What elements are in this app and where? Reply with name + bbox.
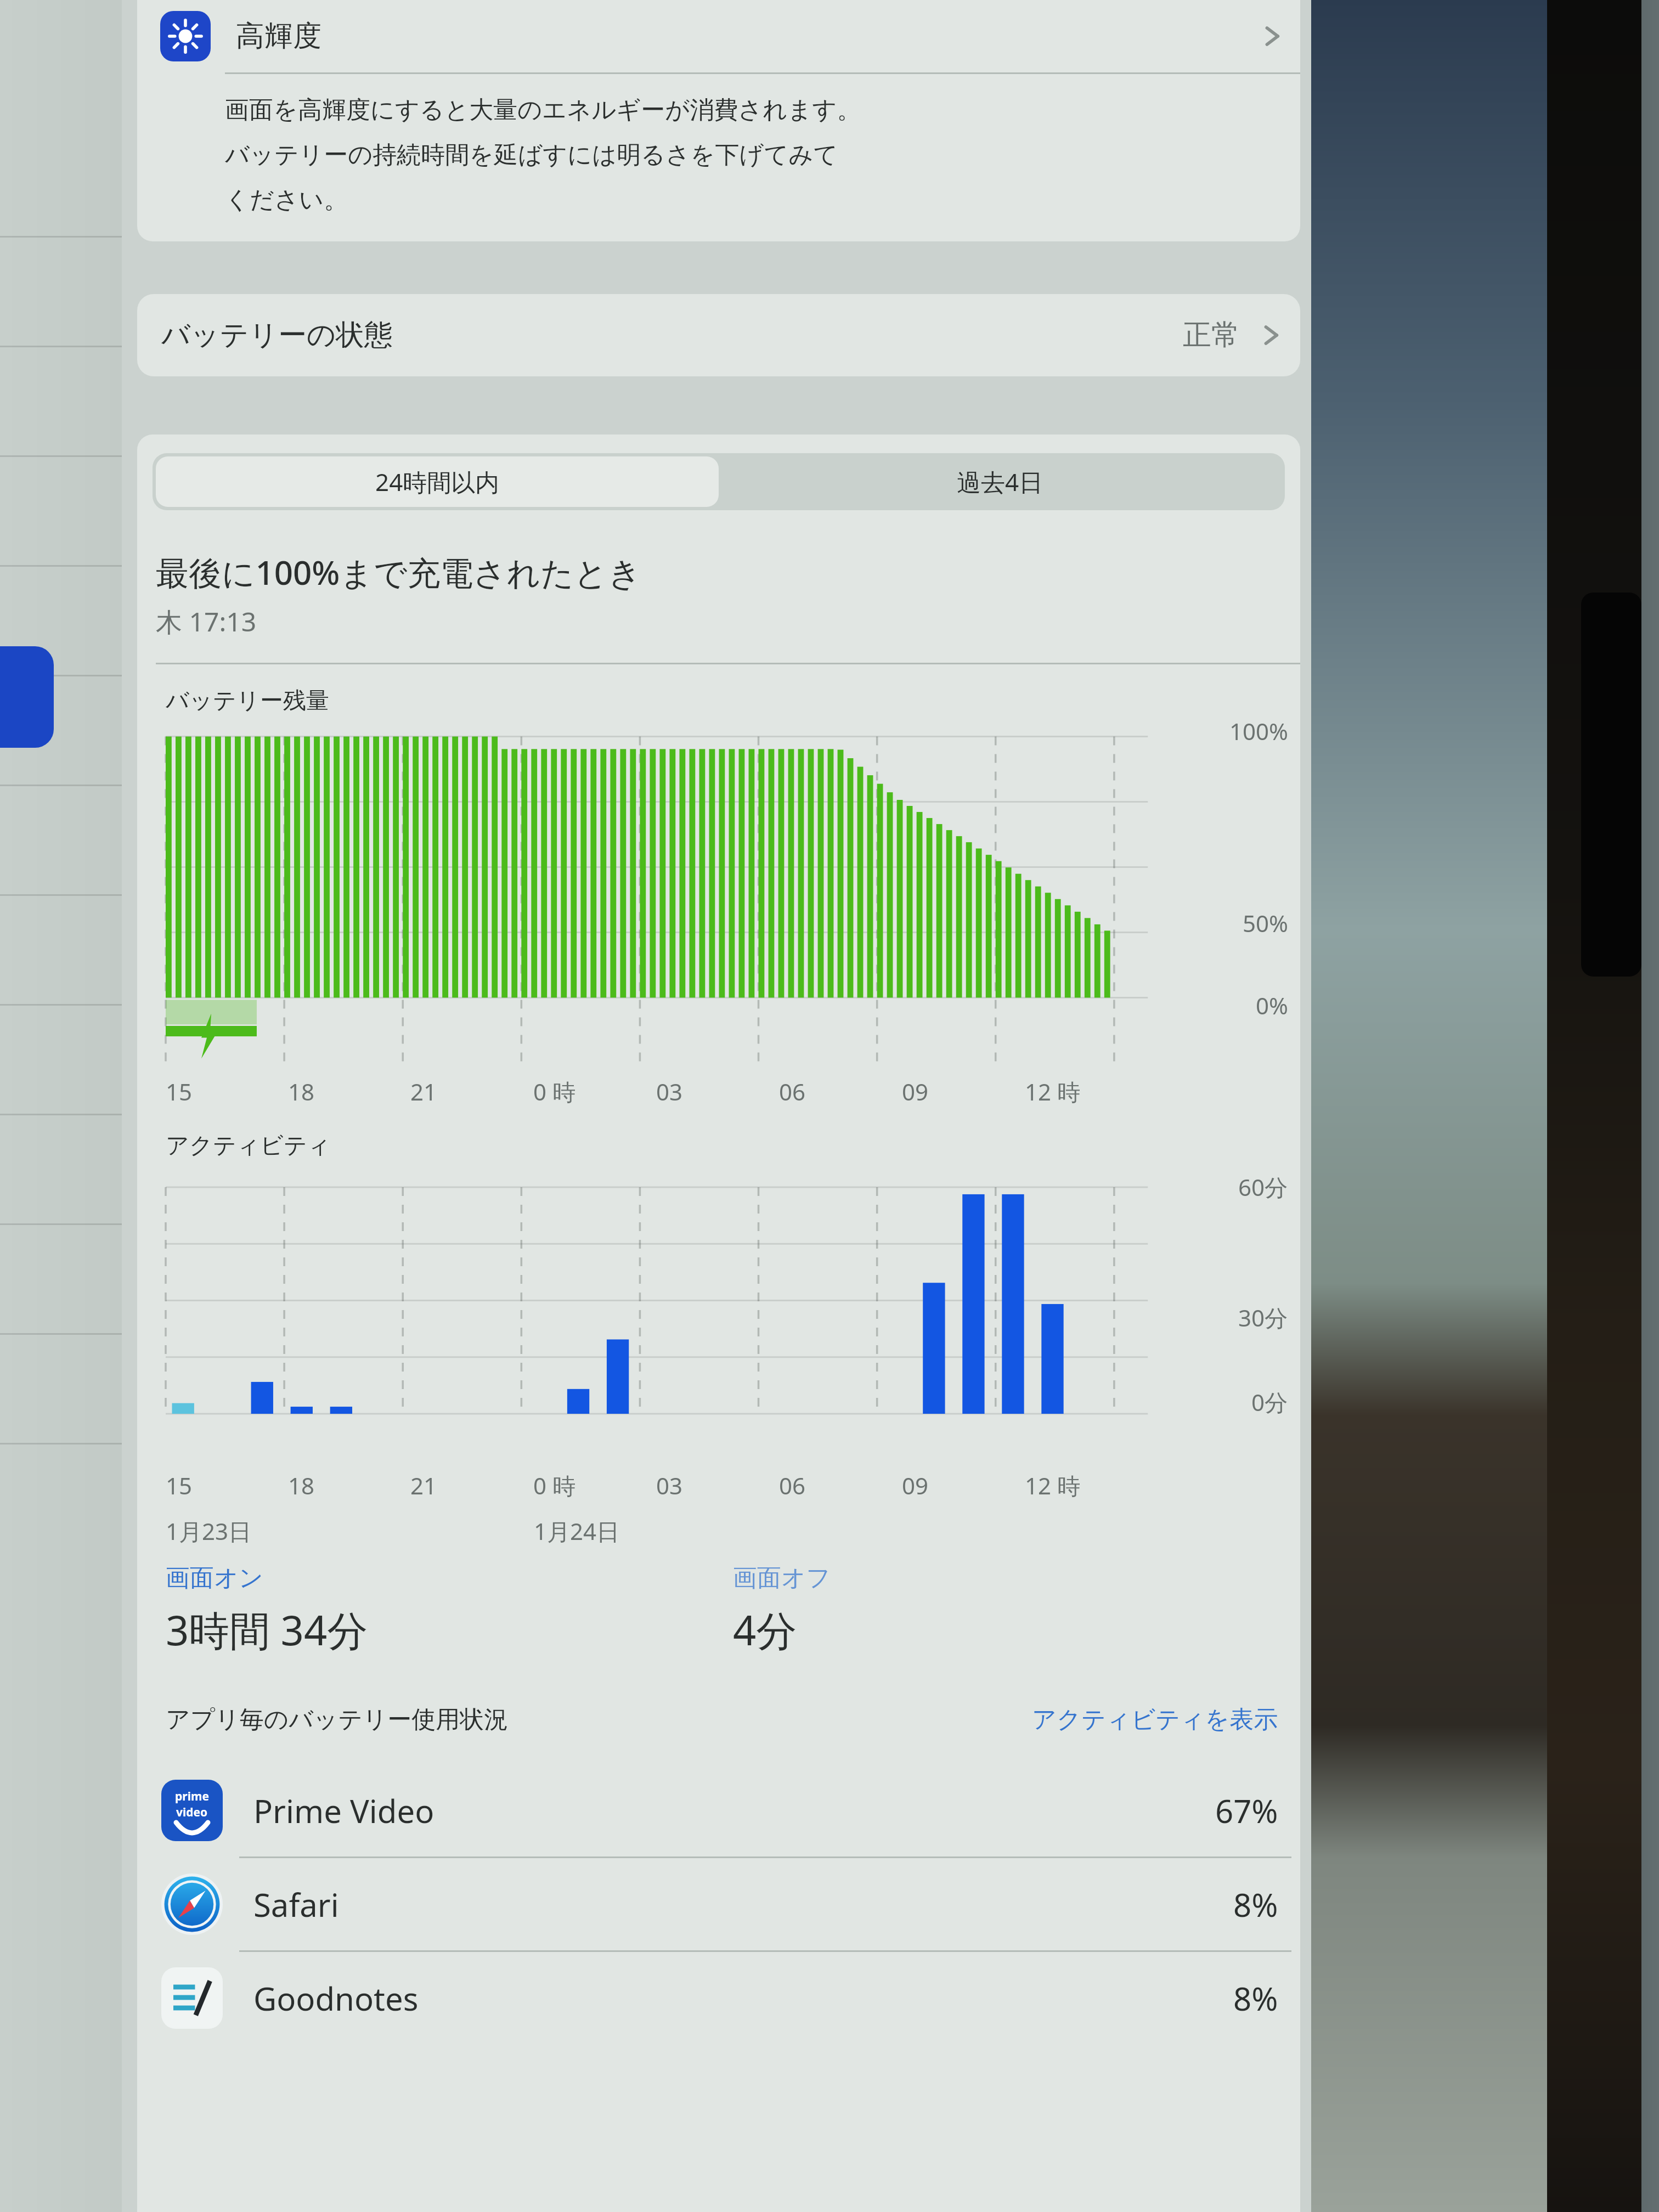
staticText: prime [175, 1788, 209, 1804]
staticText: 0 時 [533, 1076, 575, 1107]
button[interactable]: バッテリー [0, 646, 54, 748]
staticText: 0 時 [533, 1470, 575, 1501]
button[interactable]: 過去4日 [719, 456, 1282, 507]
staticText: 24時間以内 [375, 465, 500, 498]
button[interactable]: 24時間以内 [156, 456, 719, 507]
staticText: 60分 [1238, 1171, 1288, 1203]
staticText: 0% [1256, 990, 1288, 1021]
staticText: 06 [779, 1076, 806, 1107]
staticText: 21 [410, 1076, 437, 1107]
staticText: video [176, 1804, 208, 1820]
staticText: 1月23日 [166, 1515, 252, 1547]
button[interactable]: アクティビティを表示 [1032, 1705, 1278, 1735]
staticText: 100% [1229, 715, 1288, 747]
staticText: 30分 [1238, 1302, 1288, 1333]
staticText: 67% [1215, 1789, 1278, 1832]
button[interactable]: バッテリーの状態 [137, 294, 1300, 376]
staticText: 画面オン [166, 1563, 264, 1593]
staticText: 1月24日 [534, 1515, 620, 1547]
staticText: 12 時 [1025, 1470, 1080, 1501]
staticText: 画面を高輝度にすると大量のエネルギーが消費されます。 バッテリーの持続時間を延ば… [225, 95, 861, 215]
staticText: 18 [288, 1470, 315, 1501]
staticText: 21 [410, 1470, 437, 1501]
staticText: アクティビティを表示 [1032, 1705, 1278, 1735]
staticText: 8% [1233, 1977, 1278, 2020]
button[interactable]: Safari [137, 1858, 1300, 1950]
staticText: 画面オフ [733, 1563, 831, 1593]
staticText: 15 [166, 1076, 193, 1107]
staticText: 03 [656, 1076, 683, 1107]
staticText: 8% [1233, 1883, 1278, 1926]
staticText: 12 時 [1025, 1076, 1080, 1107]
staticText: 06 [779, 1470, 806, 1501]
staticText: Prime Video [253, 1789, 435, 1832]
staticText: 50% [1243, 907, 1288, 939]
staticText: 0分 [1251, 1386, 1288, 1418]
staticText: 15 [166, 1470, 193, 1501]
staticText: アクティビティ [166, 1131, 331, 1160]
staticText: アプリ毎のバッテリー使用状況 [166, 1705, 509, 1735]
staticText: 最後に100%まで充電されたとき [156, 550, 642, 595]
staticText: 09 [902, 1076, 929, 1107]
staticText: 木 17:13 [156, 603, 257, 640]
staticText: Goodnotes [253, 1977, 419, 2020]
staticText: 高輝度 [236, 18, 321, 54]
staticText: 正常 [1183, 317, 1240, 353]
staticText: 03 [656, 1470, 683, 1501]
staticText: 過去4日 [957, 465, 1043, 498]
staticText: バッテリーの状態 [161, 317, 393, 353]
staticText: Safari [253, 1883, 339, 1926]
button[interactable]: 高輝度 [137, 0, 1300, 72]
staticText: 4分 [733, 1602, 797, 1657]
staticText: 09 [902, 1470, 929, 1501]
button[interactable]: Goodnotes [137, 1952, 1300, 2044]
button[interactable]: prime [137, 1764, 1300, 1857]
staticText: 3時間 34分 [166, 1602, 368, 1657]
staticText: 18 [288, 1076, 315, 1107]
staticText: バッテリー残量 [166, 686, 329, 715]
